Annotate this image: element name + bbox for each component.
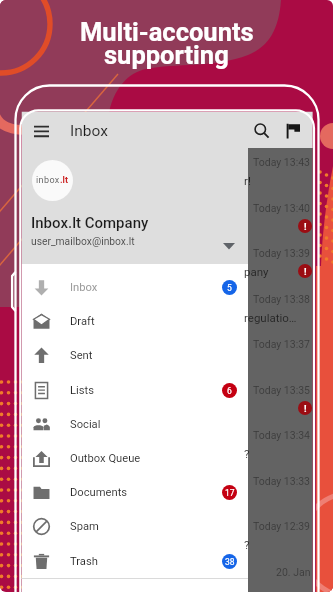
button[interactable]: inbox — [22, 148, 249, 264]
button[interactable]: Switch account — [218, 235, 240, 257]
staticText: Outbox Queue — [70, 452, 141, 465]
staticText: Today 13:38 — [253, 293, 311, 305]
button[interactable]: Spam — [22, 509, 249, 543]
staticText: 20. Jan — [276, 566, 311, 578]
staticText: Spam — [70, 520, 99, 533]
staticText: user_mailbox@inbox.lt — [31, 235, 135, 247]
staticText: supporting — [104, 40, 229, 70]
staticText: ! — [304, 266, 307, 277]
staticText: Documents — [70, 486, 128, 499]
staticText: Today 13:33 — [253, 475, 311, 487]
staticText: Draft — [70, 315, 95, 328]
staticText: 38 — [225, 557, 235, 567]
staticText: Inbox — [70, 122, 108, 140]
staticText: 17 — [225, 488, 235, 498]
staticText: pany — [244, 265, 269, 278]
staticText: Today 13:43 — [253, 156, 311, 168]
button[interactable]: Draft — [22, 304, 249, 338]
staticText: ? — [244, 447, 250, 460]
button[interactable]: Open navigation drawer — [27, 117, 55, 145]
button[interactable]: Outbox Queue — [22, 441, 249, 475]
button[interactable]: Inbox — [22, 270, 249, 304]
staticText: Social — [70, 418, 101, 431]
staticText: Today 12:39 — [253, 520, 311, 532]
staticText: ? — [244, 538, 250, 551]
staticText: Today 13:39 — [253, 247, 311, 259]
staticText: Today 13:35 — [253, 384, 311, 396]
staticText: .lt — [60, 175, 69, 186]
button[interactable]: Social — [22, 407, 249, 441]
staticText: Trash — [70, 555, 98, 568]
staticText: Today 13:37 — [253, 338, 311, 350]
staticText: Multi-accounts — [80, 17, 254, 47]
button[interactable]: Sent — [22, 338, 249, 372]
staticText: Inbox — [70, 281, 98, 294]
staticText: ! — [304, 221, 307, 232]
staticText: 6 — [227, 386, 232, 396]
staticText: regulatio… — [244, 311, 297, 324]
button[interactable]: Search — [248, 117, 276, 145]
button[interactable]: Flag — [280, 117, 308, 145]
staticText: Inbox.lt Company — [31, 214, 149, 232]
button[interactable]: Lists — [22, 373, 249, 407]
staticText: Today 13:34 — [253, 429, 311, 441]
staticText: ! — [304, 403, 307, 414]
staticText: r! — [244, 174, 251, 187]
staticText: 5 — [227, 283, 232, 293]
button[interactable]: Documents — [22, 475, 249, 509]
button[interactable]: Trash — [22, 544, 249, 578]
staticText: inbox — [36, 175, 60, 186]
staticText: Today 13:40 — [253, 202, 311, 214]
staticText: Sent — [70, 349, 93, 362]
staticText: Lists — [70, 384, 94, 397]
